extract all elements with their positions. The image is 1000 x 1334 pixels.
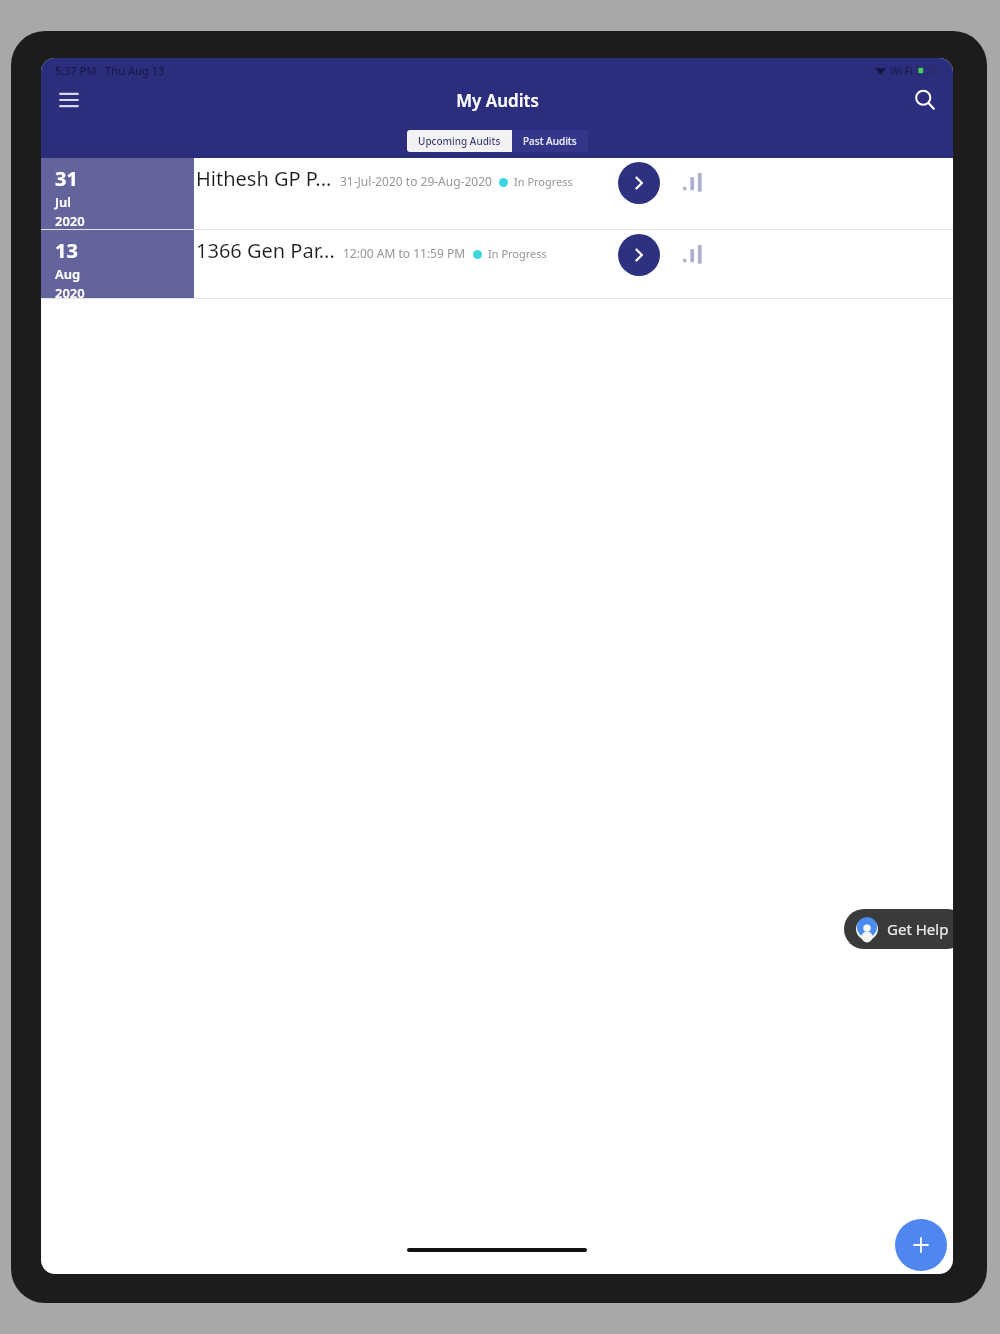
button[interactable]: View audit report — [672, 234, 714, 276]
button[interactable]: Open audit — [618, 162, 660, 204]
button[interactable]: View audit report — [672, 162, 714, 204]
button[interactable]: Past Audits — [512, 130, 588, 152]
staticText: 2020 — [55, 212, 85, 229]
staticText: Upcoming Audits — [418, 134, 501, 148]
staticText: 5:37 PM Thu Aug 13 — [55, 63, 165, 78]
staticText: 31 — [55, 165, 78, 192]
staticText: 12:00 AM to 11:59 PM — [343, 245, 466, 261]
staticText: 1366 Gen Par... — [196, 237, 335, 264]
staticText: Wi-Fi — [890, 64, 913, 78]
staticText: Past Audits — [523, 134, 577, 148]
button[interactable]: 31 — [41, 158, 953, 229]
button[interactable]: 13 — [41, 230, 953, 298]
staticText: 13 — [55, 237, 78, 264]
button[interactable]: Open navigation menu — [47, 80, 91, 120]
staticText: In Progress — [488, 246, 547, 261]
button[interactable]: Open audit — [618, 234, 660, 276]
button[interactable]: Get Help — [844, 909, 953, 949]
button[interactable]: Search — [903, 80, 947, 120]
staticText: Hithesh GP P... — [196, 165, 332, 192]
staticText: Get Help — [887, 919, 949, 939]
staticText: 31-Jul-2020 to 29-Aug-2020 — [340, 173, 492, 189]
button[interactable]: Add audit — [895, 1219, 947, 1271]
staticText: Aug — [55, 265, 81, 283]
staticText: Jul — [55, 193, 71, 211]
staticText: In Progress — [514, 174, 573, 189]
staticText: My Audits — [456, 89, 539, 112]
button[interactable]: Upcoming Audits — [407, 130, 512, 152]
staticText: 2020 — [55, 284, 85, 298]
